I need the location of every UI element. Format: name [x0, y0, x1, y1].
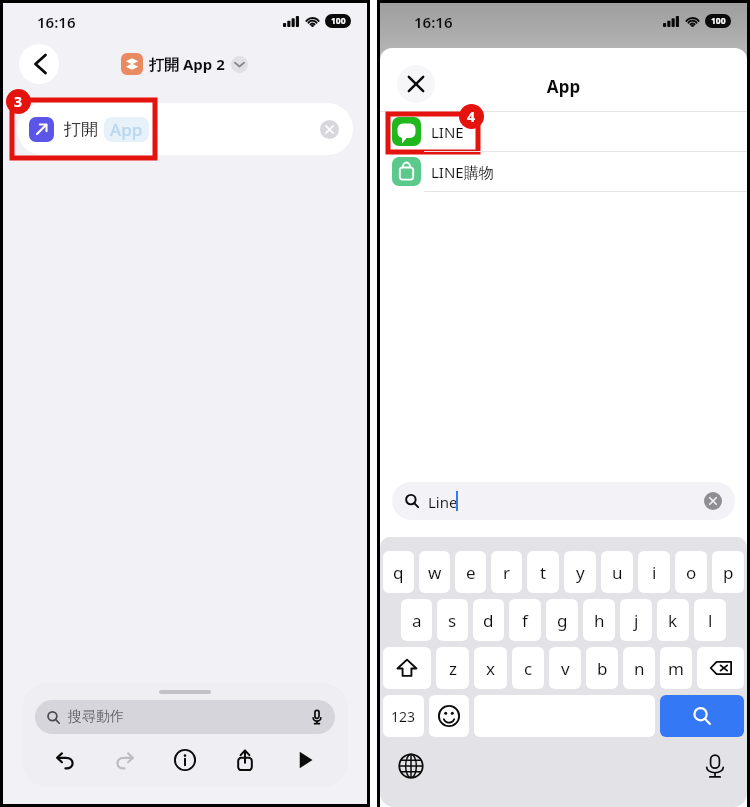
staticText: d: [483, 609, 494, 632]
staticText: 打開: [64, 119, 98, 140]
button[interactable]: a: [401, 599, 432, 641]
button[interactable]: Backspace: [697, 647, 744, 689]
staticText: c: [524, 657, 533, 680]
staticText: a: [412, 609, 422, 632]
button[interactable]: Change keyboard: [398, 753, 424, 779]
button[interactable]: r: [491, 551, 522, 593]
button[interactable]: h: [583, 599, 615, 641]
button[interactable]: k: [657, 599, 689, 641]
staticText: t: [540, 561, 547, 584]
button[interactable]: App: [110, 118, 143, 141]
button[interactable]: Redo: [108, 743, 142, 777]
staticText: l: [708, 609, 713, 632]
staticText: y: [576, 561, 585, 584]
staticText: 16:16: [414, 12, 453, 32]
button[interactable]: x: [474, 647, 507, 689]
staticText: f: [522, 609, 528, 632]
button[interactable]: 打開 App 2: [121, 50, 248, 78]
button[interactable]: g: [546, 599, 578, 641]
staticText: 搜尋動作: [68, 708, 124, 726]
button[interactable]: n: [623, 647, 655, 689]
staticText: Line: [428, 492, 458, 512]
button[interactable]: d: [473, 599, 504, 641]
staticText: i: [652, 561, 657, 584]
staticText: 打開 App 2: [149, 54, 225, 74]
button[interactable]: Dictate: [311, 709, 323, 725]
staticText: m: [668, 657, 684, 680]
button[interactable]: i: [638, 551, 670, 593]
button[interactable]: LINE: [380, 112, 747, 151]
button[interactable]: Search: [660, 695, 744, 737]
button[interactable]: LINE購物: [380, 152, 747, 191]
button[interactable]: o: [675, 551, 707, 593]
button[interactable]: Undo: [48, 743, 82, 777]
button[interactable]: Line: [392, 482, 735, 520]
button[interactable]: l: [694, 599, 726, 641]
button[interactable]: Dictate: [702, 753, 728, 779]
staticText: g: [557, 609, 568, 632]
staticText: o: [686, 561, 697, 584]
staticText: v: [561, 657, 570, 680]
button[interactable]: Clear text: [704, 492, 722, 510]
staticText: u: [612, 561, 623, 584]
staticText: j: [634, 609, 639, 632]
button[interactable]: Clear: [320, 120, 339, 139]
staticText: 123: [391, 707, 416, 726]
button[interactable]: s: [437, 599, 468, 641]
button[interactable]: 搜尋動作: [35, 700, 335, 734]
button[interactable]: y: [564, 551, 596, 593]
staticText: k: [668, 609, 678, 632]
button[interactable]: t: [527, 551, 559, 593]
staticText: 4: [467, 107, 476, 126]
button[interactable]: p: [712, 551, 744, 593]
staticText: LINE: [431, 122, 464, 142]
button[interactable]: 123: [383, 695, 424, 737]
button[interactable]: Info: [168, 743, 202, 777]
staticText: s: [448, 609, 457, 632]
staticText: e: [466, 561, 476, 584]
button[interactable]: Share: [228, 743, 262, 777]
staticText: App: [110, 118, 143, 141]
staticText: 16:16: [37, 12, 76, 32]
staticText: 100: [331, 15, 346, 27]
staticText: LINE購物: [431, 162, 494, 182]
button[interactable]: Shift: [383, 647, 431, 689]
button[interactable]: e: [455, 551, 486, 593]
staticText: 100: [711, 15, 726, 27]
button[interactable]: z: [436, 647, 469, 689]
button[interactable]: Close: [397, 65, 435, 103]
button[interactable]: Run: [288, 743, 322, 777]
button[interactable]: m: [660, 647, 692, 689]
button[interactable]: q: [383, 551, 414, 593]
button[interactable]: v: [549, 647, 581, 689]
button[interactable]: c: [512, 647, 544, 689]
staticText: q: [393, 561, 404, 584]
staticText: App: [380, 75, 747, 98]
staticText: n: [634, 657, 645, 680]
button[interactable]: j: [620, 599, 652, 641]
staticText: p: [723, 561, 734, 584]
button[interactable]: u: [601, 551, 633, 593]
staticText: h: [594, 609, 605, 632]
staticText: 3: [14, 92, 23, 111]
button[interactable]: b: [586, 647, 618, 689]
button[interactable]: f: [509, 599, 541, 641]
staticText: r: [503, 561, 511, 584]
button[interactable]: Back: [19, 44, 59, 84]
staticText: w: [428, 561, 442, 584]
staticText: x: [486, 657, 495, 680]
staticText: z: [449, 657, 457, 680]
staticText: b: [597, 657, 608, 680]
button[interactable]: 打開: [17, 103, 353, 155]
button[interactable]: Emoji: [429, 695, 469, 737]
button[interactable]: w: [419, 551, 450, 593]
